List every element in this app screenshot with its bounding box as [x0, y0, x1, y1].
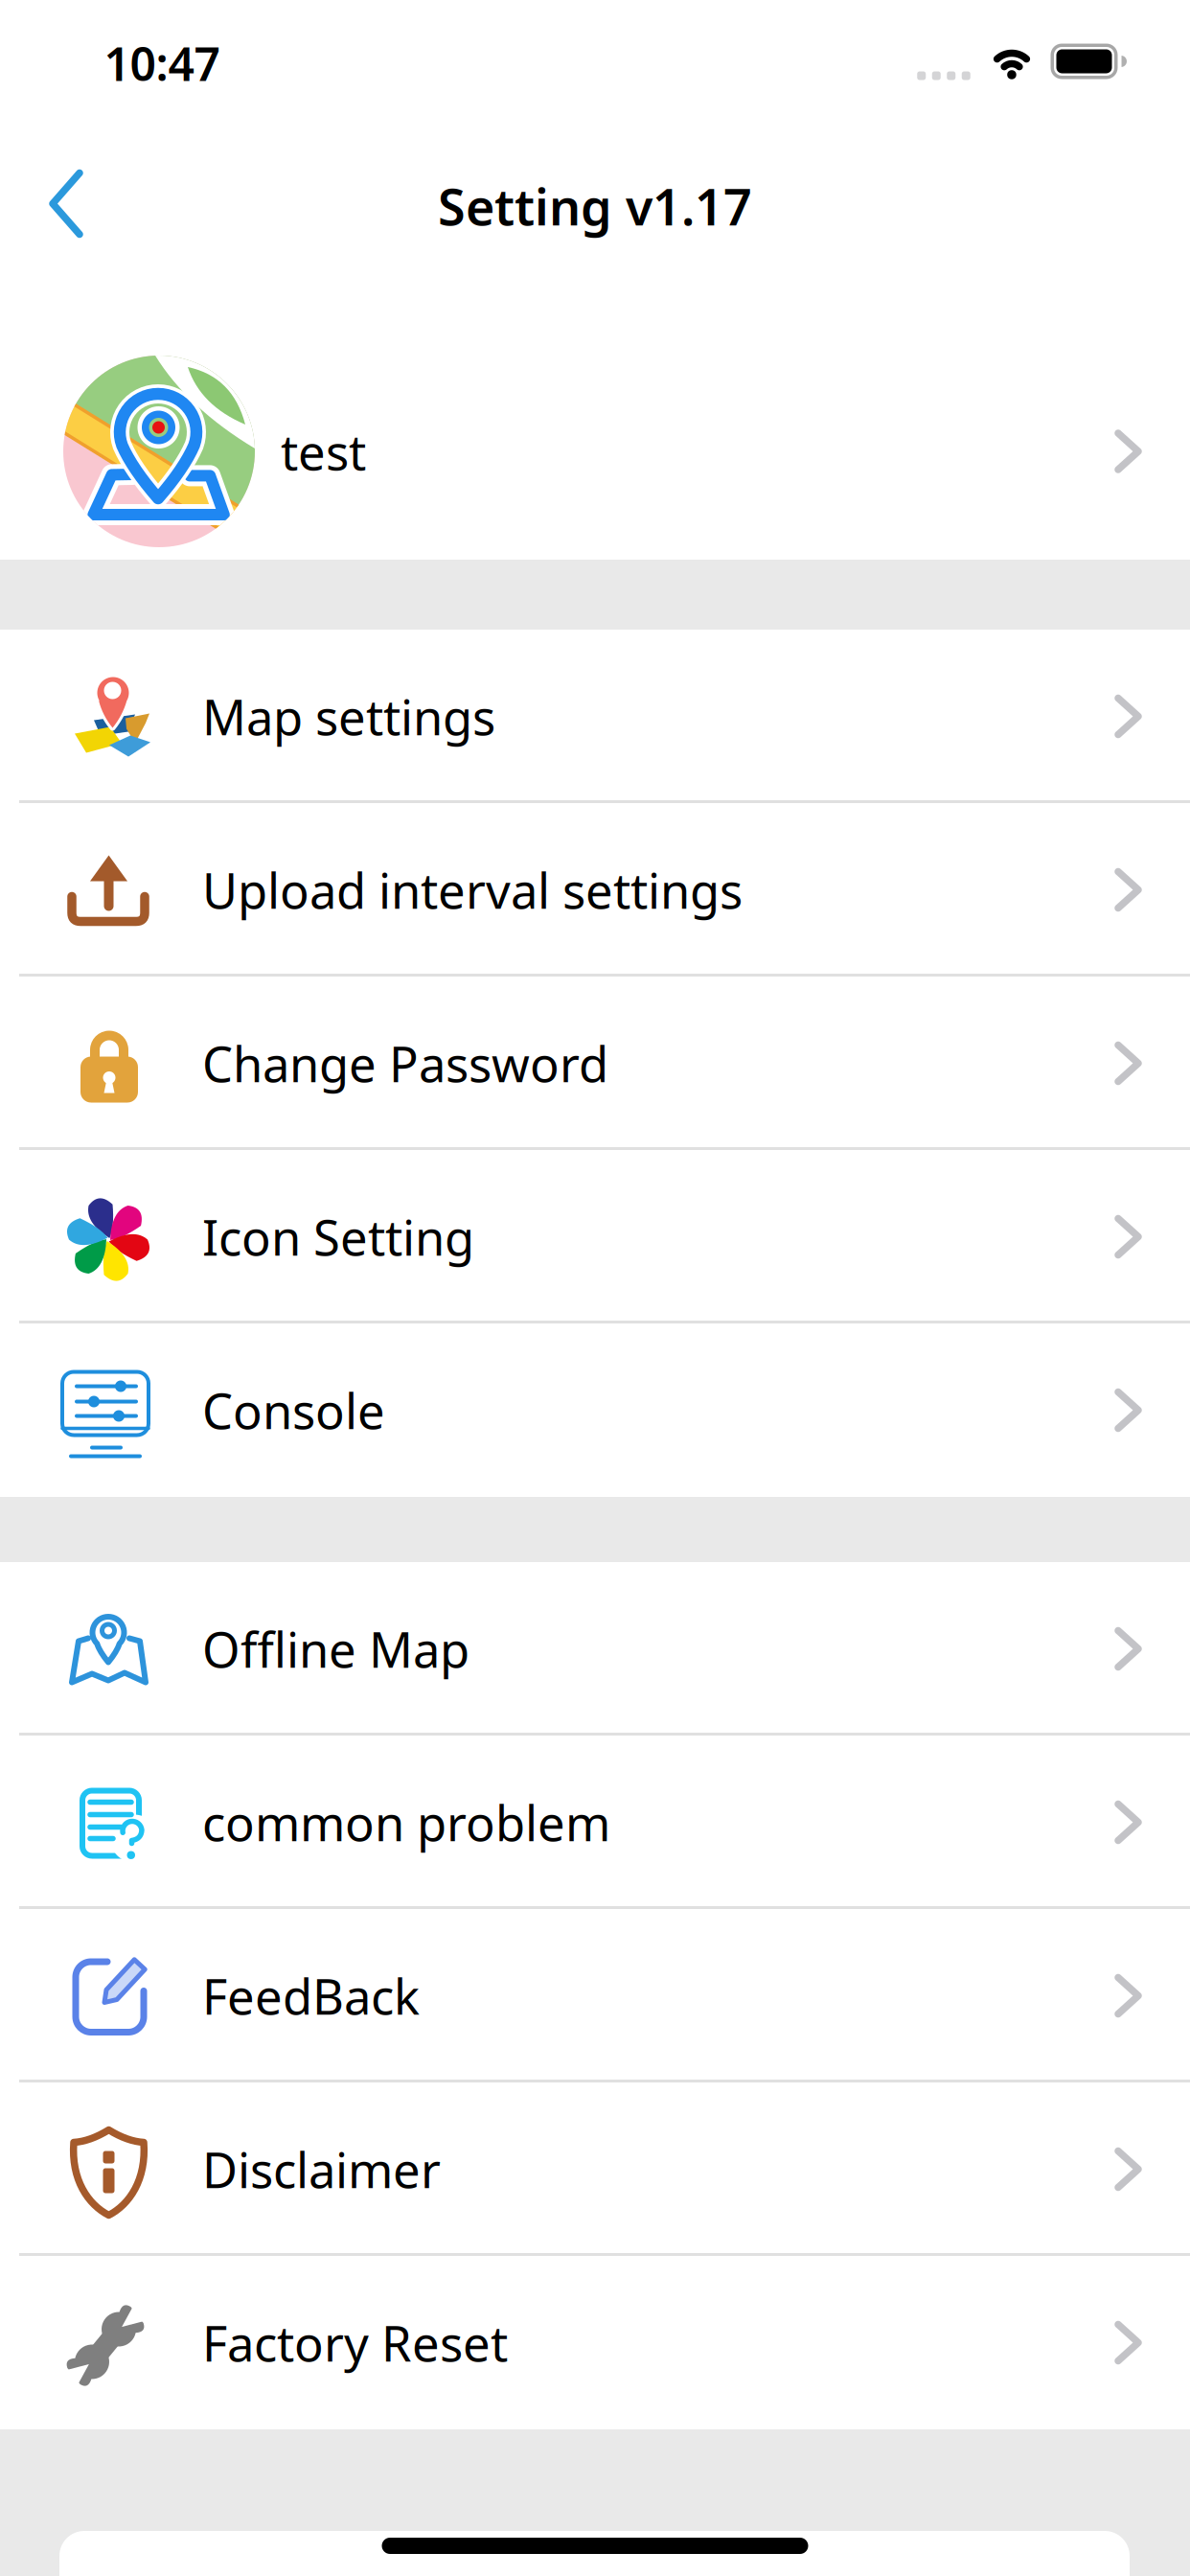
staticText: test [281, 419, 366, 484]
button[interactable]: Back [21, 141, 111, 266]
staticText: 10:47 [104, 33, 220, 94]
staticText: Change Password [202, 1031, 608, 1096]
button[interactable]: Change Password [0, 977, 1190, 1150]
staticText: Disclaimer [202, 2137, 441, 2201]
button[interactable]: Offline Map [0, 1562, 1190, 1736]
button[interactable]: Upload interval settings [0, 803, 1190, 977]
button[interactable]: Console [0, 1323, 1190, 1497]
staticText: Console [202, 1378, 385, 1442]
button[interactable]: Icon Setting [0, 1150, 1190, 1323]
staticText: FeedBack [202, 1964, 420, 2028]
button[interactable]: Map settings [0, 630, 1190, 803]
button[interactable]: FeedBack [0, 1909, 1190, 2082]
staticText: common problem [202, 1790, 610, 1855]
staticText: Factory Reset [202, 2310, 508, 2375]
button[interactable]: test [0, 356, 1190, 547]
staticText: Setting v1.17 [438, 173, 752, 239]
staticText: Map settings [202, 684, 495, 749]
button[interactable]: Factory Reset [0, 2256, 1190, 2429]
staticText: Icon Setting [202, 1205, 474, 1269]
button[interactable]: Disclaimer [0, 2082, 1190, 2256]
button[interactable]: common problem [0, 1736, 1190, 1909]
staticText: Upload interval settings [202, 858, 743, 922]
staticText: Offline Map [202, 1617, 469, 1681]
